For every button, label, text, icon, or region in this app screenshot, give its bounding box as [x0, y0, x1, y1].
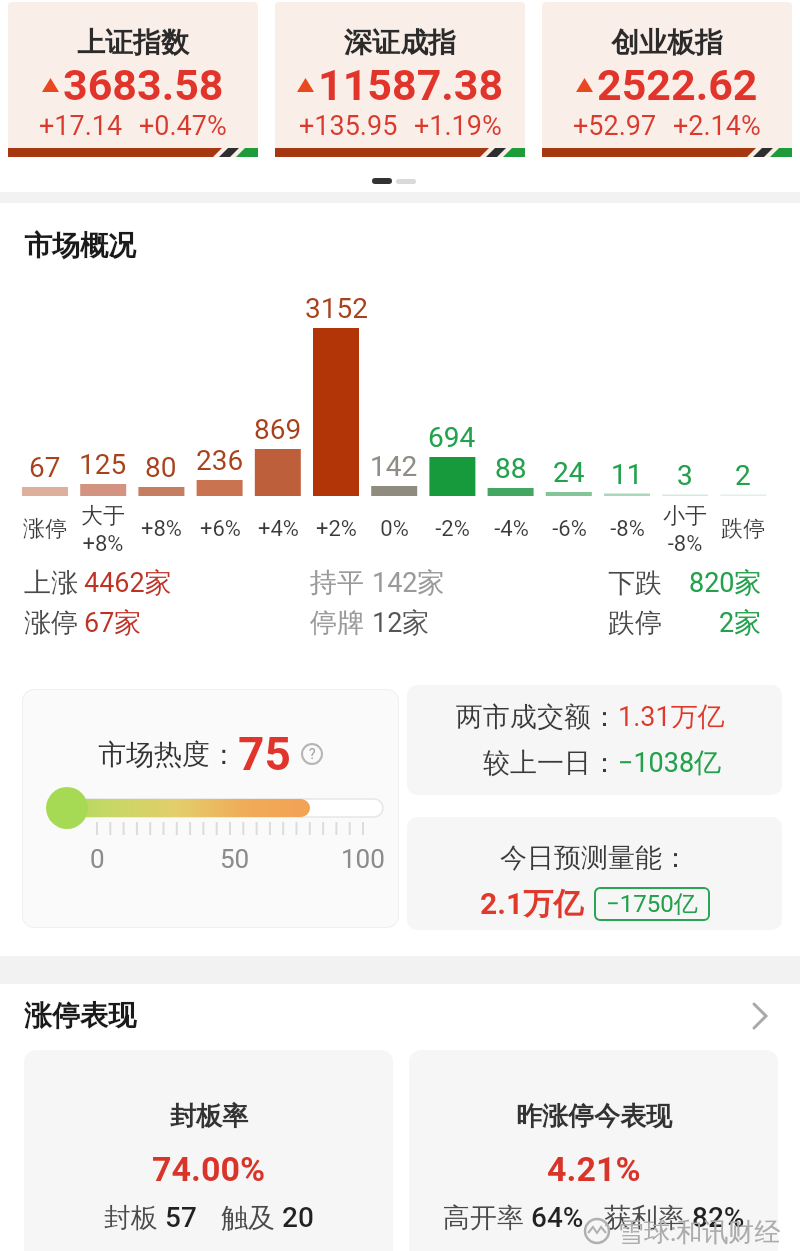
staticText: -4%: [494, 516, 529, 542]
staticText: 75: [238, 727, 291, 781]
staticText: 获利率: [604, 1201, 692, 1235]
staticText: 今日预测量能：: [500, 841, 689, 875]
staticText: +8%: [141, 516, 182, 542]
staticText: 2.1万亿: [480, 885, 584, 923]
staticText: 20: [282, 1201, 314, 1234]
staticText: 较上一日：: [483, 746, 618, 780]
staticText: 3: [677, 459, 693, 492]
staticText: 上涨: [24, 566, 78, 600]
staticText: 82%: [692, 1201, 745, 1234]
staticText: +2.14%: [673, 110, 761, 142]
staticText: 3152: [305, 292, 368, 325]
staticText: 2家: [719, 606, 762, 640]
staticText: 深证成指: [344, 25, 456, 60]
staticText: 236: [196, 444, 244, 477]
staticText: 50: [220, 844, 250, 874]
staticText: 封板: [104, 1201, 165, 1235]
staticText: 上证指数: [77, 25, 189, 60]
staticText: -8%: [610, 516, 645, 542]
staticText: 涨停表现: [24, 998, 136, 1033]
staticText: 869: [254, 413, 302, 446]
staticText: 两市成交额：: [456, 700, 618, 734]
staticText: 3683.58: [63, 60, 224, 110]
staticText: 2: [735, 459, 751, 492]
staticText: +1.19%: [414, 110, 502, 142]
staticText: -2%: [435, 516, 470, 542]
staticText: 11: [611, 458, 643, 491]
staticText: 125: [79, 448, 127, 481]
staticText: −1038亿: [618, 746, 722, 780]
staticText: 57: [165, 1201, 197, 1234]
staticText: 4.21%: [547, 1149, 641, 1189]
staticText: 市场热度：: [98, 737, 238, 772]
staticText: 停牌: [310, 606, 364, 640]
staticText: 跌停: [721, 515, 765, 543]
staticText: 0: [90, 844, 105, 874]
staticText: 67家: [84, 606, 142, 640]
staticText: 100: [341, 844, 385, 874]
staticText: 持平: [310, 566, 364, 600]
staticText: 跌停: [608, 606, 662, 640]
staticText: 24: [553, 456, 585, 489]
staticText: ?: [309, 746, 316, 762]
staticText: +135.95: [299, 110, 398, 142]
staticText: 下跌: [608, 566, 662, 600]
staticText: 创业板指: [611, 25, 723, 60]
staticText: 820家: [689, 566, 762, 600]
staticText: 12家: [372, 606, 430, 640]
staticText: 小于 -8%: [663, 502, 707, 556]
staticText: 2522.62: [597, 60, 758, 110]
staticText: 雪球:和讯财经: [618, 1216, 781, 1249]
staticText: 88: [495, 452, 527, 485]
staticText: +0.47%: [139, 110, 227, 142]
staticText: -6%: [552, 516, 587, 542]
staticText: 封板率: [170, 1100, 248, 1133]
staticText: 触及: [221, 1201, 282, 1235]
staticText: 涨停: [23, 515, 67, 543]
staticText: 64%: [531, 1201, 584, 1234]
staticText: 大于 +8%: [81, 502, 125, 556]
staticText: 11587.38: [318, 60, 504, 110]
staticText: 694: [428, 421, 476, 454]
staticText: 142家: [372, 566, 445, 600]
staticText: 涨停: [24, 606, 78, 640]
staticText: 74.00%: [152, 1149, 266, 1189]
staticText: +2%: [316, 516, 357, 542]
staticText: −1750亿: [606, 889, 698, 919]
staticText: +4%: [258, 516, 299, 542]
staticText: 67: [29, 451, 61, 484]
staticText: +17.14: [39, 110, 123, 142]
staticText: 昨涨停今表现: [516, 1100, 672, 1133]
staticText: 80: [145, 451, 177, 484]
staticText: +6%: [200, 516, 241, 542]
staticText: 市场概况: [24, 228, 136, 263]
staticText: 142: [370, 450, 418, 483]
staticText: 4462家: [84, 566, 172, 600]
staticText: +52.97: [573, 110, 657, 142]
staticText: 0%: [380, 516, 409, 542]
staticText: 高开率: [443, 1201, 531, 1235]
staticText: 1.31万亿: [618, 700, 725, 734]
